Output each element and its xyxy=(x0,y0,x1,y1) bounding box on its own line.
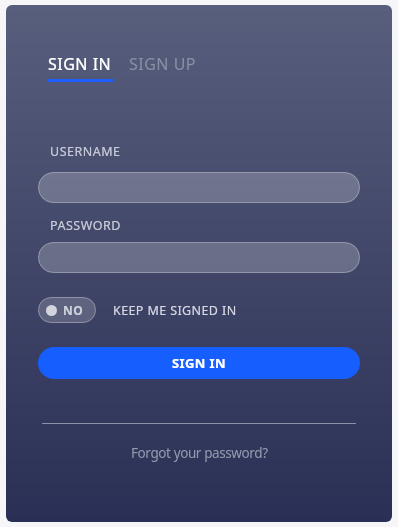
staticText: NO xyxy=(63,302,84,318)
button[interactable]: NO xyxy=(38,297,96,323)
staticText: PASSWORD xyxy=(50,217,121,234)
button[interactable] xyxy=(38,242,360,273)
button[interactable] xyxy=(38,172,360,203)
button[interactable]: SIGN IN xyxy=(44,53,116,82)
staticText: USERNAME xyxy=(50,143,121,160)
staticText: KEEP ME SIGNED IN xyxy=(113,302,237,319)
button[interactable]: Forgot your password? xyxy=(131,444,268,462)
staticText: SIGN IN xyxy=(48,53,112,75)
button[interactable]: SIGN IN xyxy=(38,347,360,379)
staticText: SIGN IN xyxy=(172,354,227,372)
button[interactable]: SIGN UP xyxy=(127,53,199,75)
